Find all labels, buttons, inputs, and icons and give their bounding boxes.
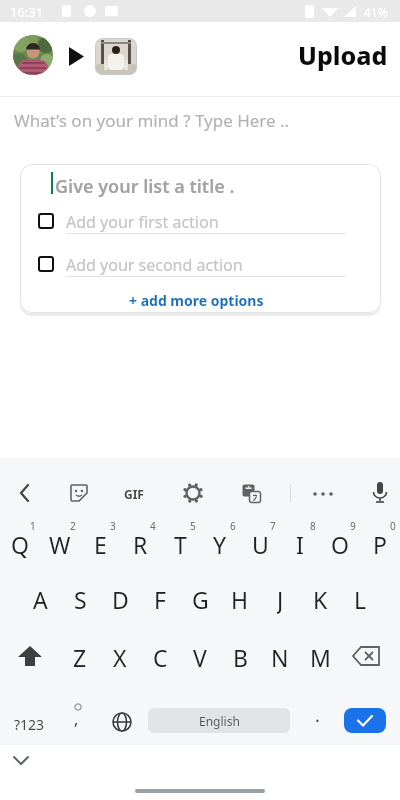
staticText: 8: [310, 519, 316, 533]
button[interactable]: English: [148, 708, 290, 733]
staticText: U: [252, 529, 269, 559]
button[interactable]: B: [221, 642, 259, 672]
staticText: GIF: [124, 486, 144, 502]
staticText: ,: [74, 708, 79, 730]
staticText: Z: [73, 642, 87, 672]
button[interactable]: J: [261, 584, 299, 614]
staticText: 7: [270, 519, 276, 533]
staticText: 1: [30, 519, 36, 533]
button[interactable]: G: [181, 584, 219, 614]
staticText: D: [112, 584, 129, 614]
staticText: A: [33, 584, 48, 614]
button[interactable]: I: [281, 529, 319, 559]
staticText: 3: [110, 519, 116, 533]
staticText: P: [373, 529, 387, 559]
staticText: G: [192, 584, 209, 614]
button[interactable]: N: [261, 642, 299, 672]
staticText: I: [296, 529, 304, 559]
staticText: Give your list a title .: [55, 174, 235, 199]
staticText: 6: [230, 519, 236, 533]
button[interactable]: ?123: [8, 711, 50, 737]
staticText: Add your second action: [66, 254, 243, 276]
staticText: 0: [390, 519, 396, 533]
staticText: .: [315, 703, 320, 728]
button[interactable]: A: [21, 584, 59, 614]
button[interactable]: X: [101, 642, 139, 672]
button[interactable]: W: [41, 529, 79, 559]
staticText: F: [154, 584, 166, 614]
staticText: S: [74, 584, 87, 614]
button[interactable]: [241, 483, 262, 504]
staticText: X: [113, 642, 127, 672]
staticText: 2: [70, 519, 76, 533]
button[interactable]: V: [181, 642, 219, 672]
staticText: English: [199, 713, 240, 729]
staticText: N: [271, 642, 289, 672]
staticText: Q: [11, 529, 29, 559]
staticText: O: [331, 529, 349, 559]
button[interactable]: [38, 213, 54, 229]
staticText: V: [193, 642, 207, 672]
button[interactable]: H: [221, 584, 259, 614]
button[interactable]: L: [341, 584, 379, 614]
staticText: 41%: [364, 4, 388, 20]
button[interactable]: E: [81, 529, 119, 559]
button[interactable]: T: [161, 529, 199, 559]
button[interactable]: S: [61, 584, 99, 614]
staticText: M: [310, 642, 331, 672]
button[interactable]: Z: [61, 642, 99, 672]
staticText: Y: [213, 529, 227, 559]
button[interactable]: [38, 256, 54, 272]
staticText: T: [174, 529, 187, 559]
button[interactable]: R: [121, 529, 159, 559]
button[interactable]: O: [321, 529, 359, 559]
button[interactable]: [182, 482, 204, 504]
staticText: B: [233, 642, 248, 672]
staticText: H: [231, 584, 249, 614]
staticText: R: [133, 529, 148, 559]
staticText: Add your first action: [66, 211, 219, 233]
button[interactable]: P: [361, 529, 399, 559]
staticText: C: [153, 642, 168, 672]
button[interactable]: [12, 480, 38, 506]
staticText: 16:31: [10, 3, 44, 21]
button[interactable]: [16, 646, 44, 668]
button[interactable]: [110, 710, 134, 734]
staticText: 5: [190, 519, 196, 533]
staticText: + add more options: [129, 291, 264, 310]
staticText: ?123: [14, 715, 45, 734]
button[interactable]: M: [301, 642, 339, 672]
staticText: Upload: [298, 38, 388, 72]
button[interactable]: Q: [1, 529, 39, 559]
button[interactable]: K: [301, 584, 339, 614]
button[interactable]: U: [241, 529, 279, 559]
staticText: J: [277, 584, 284, 614]
button[interactable]: Y: [201, 529, 239, 559]
button[interactable]: [95, 38, 137, 75]
button[interactable]: [13, 35, 53, 75]
staticText: K: [313, 584, 328, 614]
button[interactable]: F: [141, 584, 179, 614]
button[interactable]: D: [101, 584, 139, 614]
button[interactable]: [68, 482, 90, 504]
staticText: What’s on your mind ? Type Here ..: [14, 109, 290, 132]
button[interactable]: + add more options: [116, 290, 276, 310]
button[interactable]: [344, 708, 386, 733]
button[interactable]: [370, 480, 390, 506]
staticText: L: [354, 584, 367, 614]
staticText: W: [49, 529, 71, 559]
staticText: E: [94, 529, 107, 559]
button[interactable]: Upload: [298, 38, 388, 72]
button[interactable]: [8, 749, 34, 773]
staticText: 9: [350, 519, 356, 533]
button[interactable]: C: [141, 642, 179, 672]
button[interactable]: [352, 646, 382, 667]
staticText: 4: [150, 519, 156, 533]
